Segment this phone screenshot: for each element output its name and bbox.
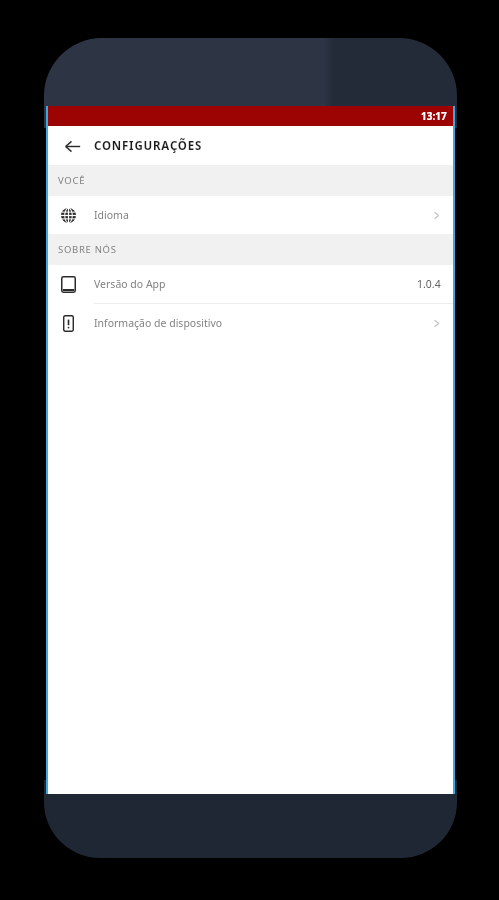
staticText: Informação de dispositivo [94,316,429,330]
staticText: 13:17 [421,109,447,123]
button[interactable]: Informação de dispositivo [48,304,453,342]
button[interactable]: Back [56,130,88,162]
button[interactable]: Idioma [48,196,453,234]
staticText: CONFIGURAÇÕES [94,138,203,154]
staticText: SOBRE NÓS [58,243,117,256]
staticText: VOCÊ [58,174,86,187]
staticText: 1.0.4 [417,277,441,291]
staticText: Versão do App [94,277,417,291]
button[interactable]: Versão do App [48,265,453,303]
staticText: Idioma [94,208,429,222]
